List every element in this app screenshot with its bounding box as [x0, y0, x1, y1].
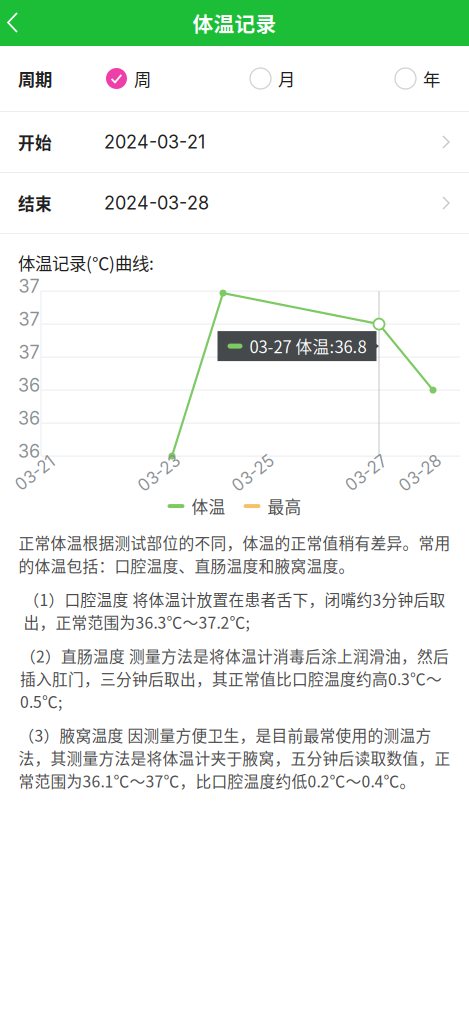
- staticText: 周: [134, 66, 151, 91]
- staticText: 03-25: [229, 463, 277, 483]
- staticText: 周期: [18, 66, 52, 91]
- button[interactable]: 结束: [0, 173, 469, 234]
- staticText: 开始: [18, 130, 52, 154]
- staticText: 03-27: [342, 463, 389, 483]
- staticText: 体温: [191, 494, 225, 518]
- button[interactable]: 月: [250, 66, 395, 91]
- staticText: 36: [18, 374, 40, 396]
- staticText: 03-21: [12, 463, 57, 483]
- staticText: 体温记录: [192, 8, 276, 38]
- staticText: 37: [18, 341, 39, 363]
- button[interactable]: 年: [395, 66, 451, 91]
- staticText: 正常体温根据测试部位的不同，体温的正常值稍有差异。常用的体温包括：口腔温度、直肠…: [18, 531, 450, 577]
- staticText: 03-28: [396, 463, 444, 483]
- staticText: 36: [18, 407, 40, 429]
- staticText: 月: [278, 66, 295, 91]
- staticText: 最高: [267, 494, 301, 518]
- staticText: 体温记录(℃)曲线:: [18, 250, 154, 275]
- staticText: 03-23: [135, 463, 183, 483]
- staticText: （1）口腔温度 将体温计放置在患者舌下，闭嘴约3分钟后取出，正常范围为36.3℃…: [23, 588, 445, 633]
- staticText: 2024-03-21: [104, 131, 205, 153]
- button[interactable]: 返回: [0, 0, 46, 46]
- staticText: 36: [18, 440, 40, 462]
- staticText: 03-27 体温:36.8: [249, 334, 366, 358]
- staticText: （3）腋窝温度 因测量方便卫生，是目前最常使用的测温方法，其测量方法是将体温计夹…: [18, 724, 450, 792]
- staticText: 年: [423, 66, 440, 91]
- button[interactable]: 开始: [0, 112, 469, 173]
- staticText: 2024-03-28: [104, 192, 209, 214]
- button[interactable]: 周: [106, 66, 250, 91]
- staticText: 37: [18, 275, 39, 297]
- staticText: 结束: [18, 191, 52, 215]
- staticText: 37: [18, 308, 39, 330]
- staticText: （2）直肠温度 测量方法是将体温计消毒后涂上润滑油，然后插入肛门，三分钟后取出，…: [20, 644, 449, 712]
